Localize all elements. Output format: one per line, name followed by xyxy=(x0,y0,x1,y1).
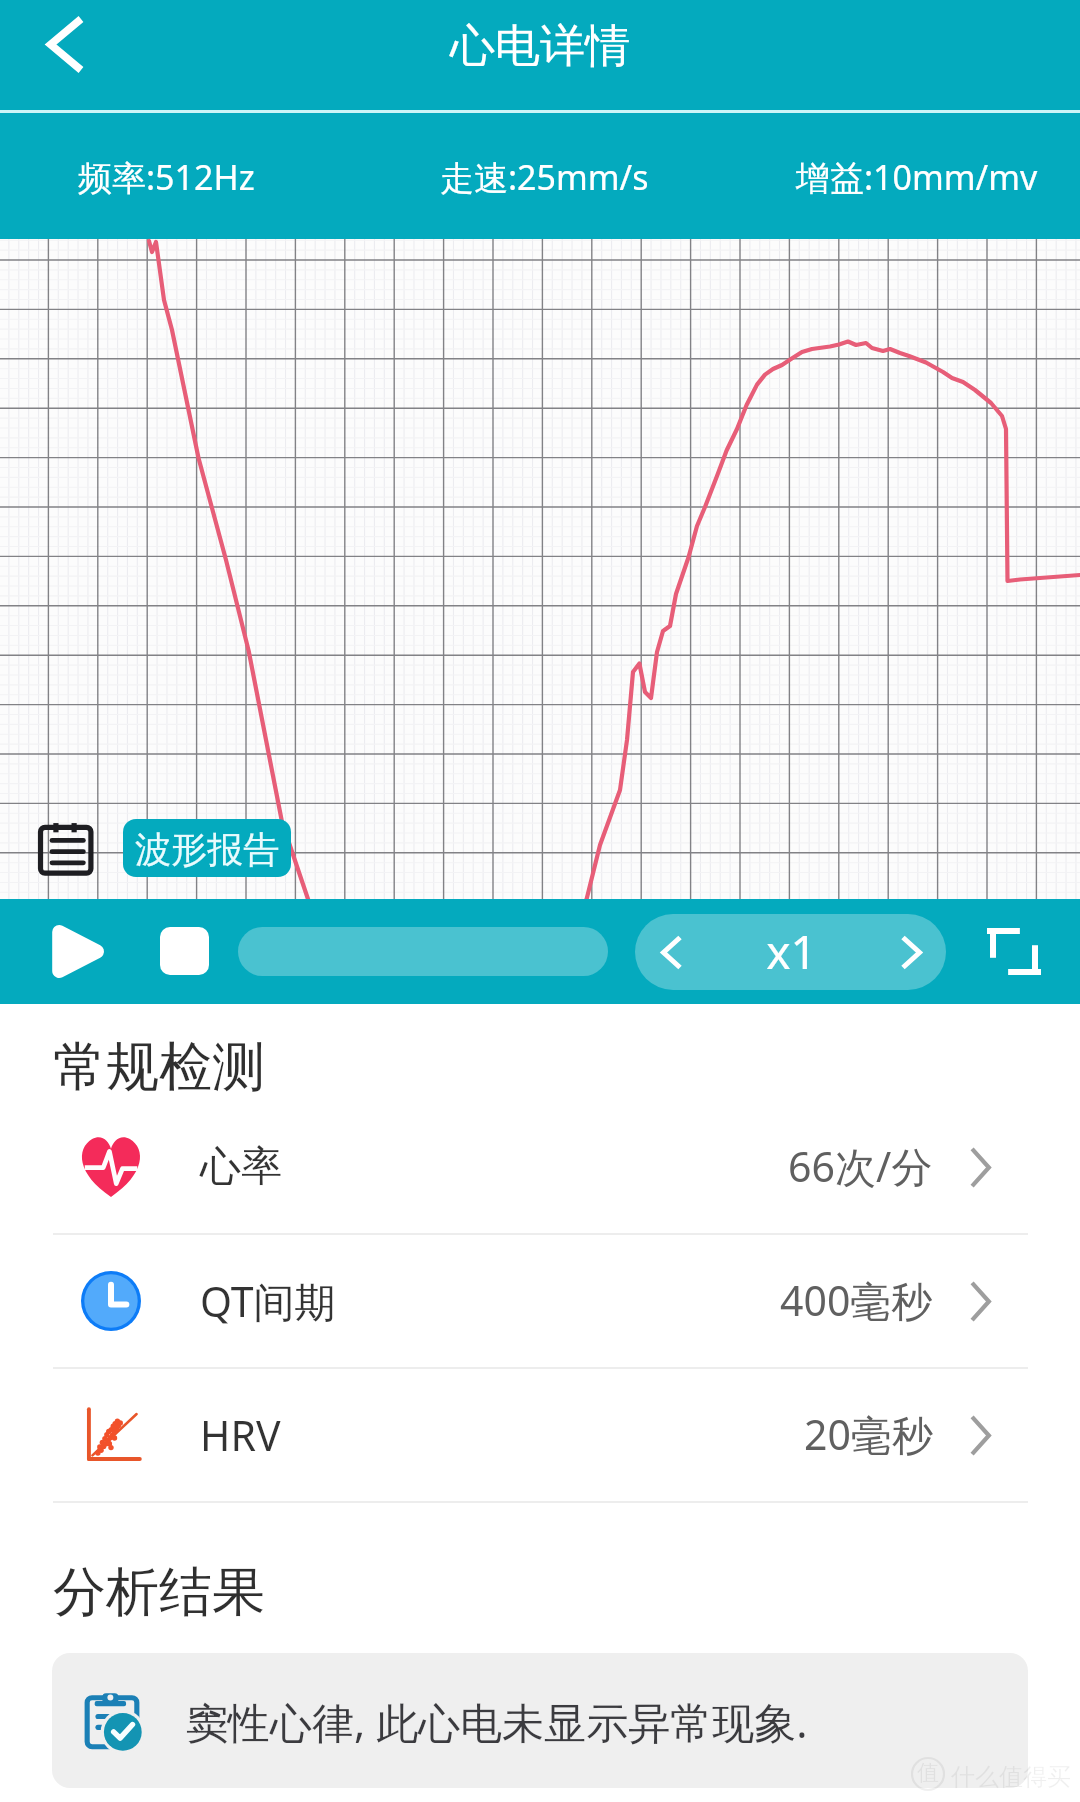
staticText: 频率:512Hz xyxy=(78,154,255,200)
button[interactable]: Play xyxy=(55,925,104,978)
button[interactable]: 心率 xyxy=(0,1100,1080,1234)
staticText: 走速:25mm/s xyxy=(440,154,649,200)
button[interactable]: 窦性心律, 此心电未显示异常现象. xyxy=(52,1653,1028,1788)
staticText: 分析结果 xyxy=(53,1559,265,1626)
button[interactable]: 波形报告 xyxy=(123,819,291,877)
staticText: 窦性心律, 此心电未显示异常现象. xyxy=(186,1693,808,1750)
staticText: QT间期 xyxy=(200,1273,336,1329)
button[interactable]: Fullscreen xyxy=(990,928,1038,975)
staticText: 值 xyxy=(917,1759,939,1787)
staticText: HRV xyxy=(200,1407,281,1463)
staticText: 什么值得买 xyxy=(951,1762,1071,1792)
staticText: 心率 xyxy=(200,1141,282,1193)
button[interactable]: x1 xyxy=(635,914,946,990)
button[interactable]: Stop xyxy=(160,927,209,975)
button[interactable]: HRV xyxy=(0,1368,1080,1502)
staticText: 增益:10mm/mv xyxy=(796,154,1038,200)
staticText: 常规检测 xyxy=(53,1034,265,1101)
button[interactable]: QT间期 xyxy=(0,1234,1080,1368)
staticText: 心电详情 xyxy=(450,18,630,75)
staticText: 66次/分 xyxy=(788,1138,933,1194)
staticText: 波形报告 xyxy=(135,827,279,872)
staticText: x1 xyxy=(682,920,901,983)
button[interactable]: Progress xyxy=(238,927,608,976)
staticText: 400毫秒 xyxy=(780,1272,933,1328)
button[interactable]: Waveform report xyxy=(38,820,94,876)
staticText: 20毫秒 xyxy=(804,1406,933,1462)
button[interactable]: Back xyxy=(0,0,140,113)
